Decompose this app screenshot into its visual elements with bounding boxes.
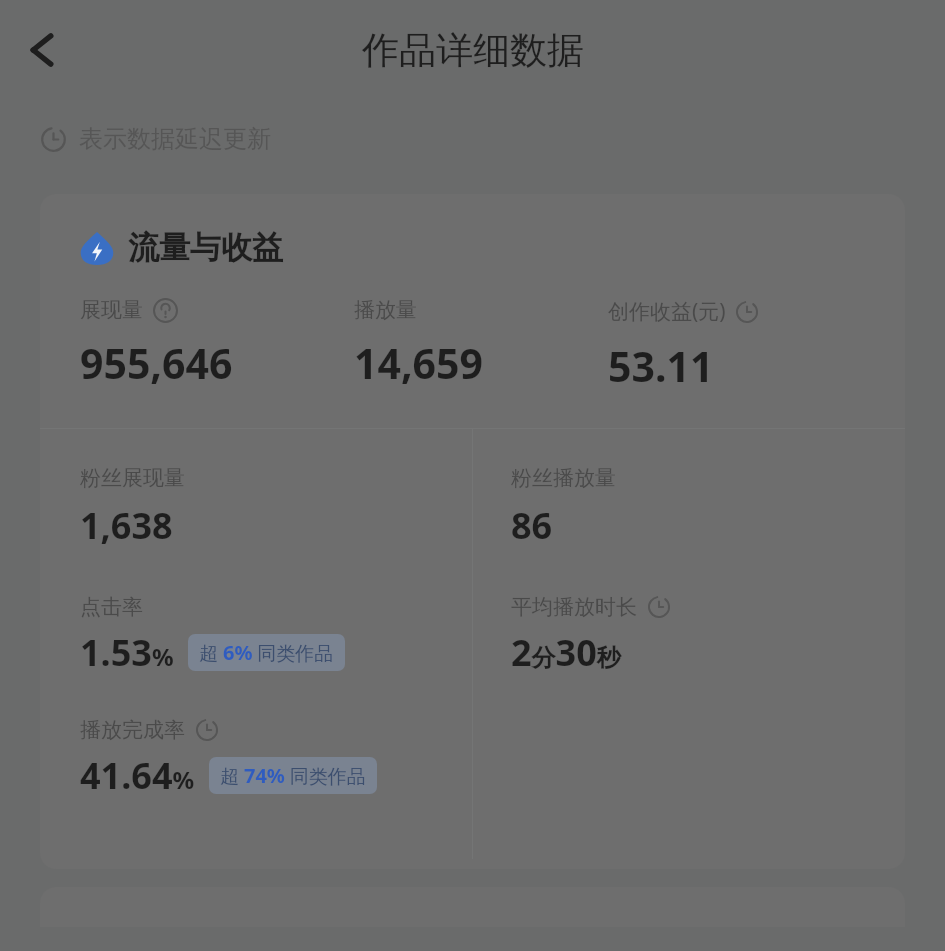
staticText: 展现量	[80, 297, 143, 323]
staticText: 播放完成率	[80, 717, 185, 743]
button[interactable]: 超 6% 同类作品	[188, 634, 345, 671]
staticText: 超 6% 同类作品	[199, 639, 334, 666]
staticText: 1.53%	[80, 628, 174, 677]
staticText: 创作收益(元)	[608, 297, 726, 326]
button[interactable]: Help	[153, 298, 178, 323]
staticText: 流量与收益	[128, 228, 283, 267]
staticText: 53.11	[608, 338, 714, 394]
staticText: 86	[511, 501, 553, 550]
staticText: 1,638	[80, 501, 173, 550]
button[interactable]: 流量与收益	[80, 228, 283, 267]
staticText: 2分30秒	[511, 628, 621, 677]
staticText: 超 74% 同类作品	[220, 762, 366, 789]
staticText: 粉丝展现量	[80, 465, 185, 491]
staticText: 粉丝播放量	[511, 465, 616, 491]
staticText: 14,659	[354, 335, 483, 391]
staticText: 播放量	[354, 297, 417, 323]
staticText: 表示数据延迟更新	[79, 124, 271, 154]
button[interactable]: Back	[12, 20, 72, 80]
button[interactable]: 超 74% 同类作品	[209, 757, 377, 794]
staticText: 作品详细数据	[362, 27, 584, 74]
staticText: 955,646	[80, 335, 233, 391]
staticText: 41.64%	[80, 751, 195, 800]
staticText: 平均播放时长	[511, 594, 637, 620]
staticText: 点击率	[80, 594, 143, 620]
